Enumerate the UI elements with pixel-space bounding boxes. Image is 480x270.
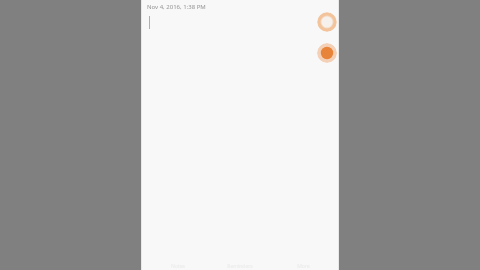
staticText: Reminders	[227, 263, 253, 270]
staticText: More	[297, 263, 310, 270]
button[interactable]: Add checklist	[317, 12, 337, 32]
staticText: Nov 4, 2016, 1:38 PM	[147, 3, 206, 11]
staticText: Notes	[171, 263, 185, 270]
button[interactable]: New note	[317, 43, 337, 63]
button[interactable]	[141, 11, 339, 41]
